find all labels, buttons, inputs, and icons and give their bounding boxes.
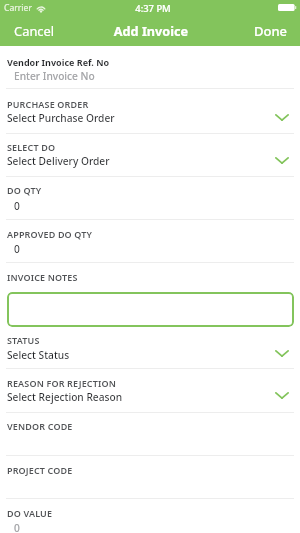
staticText: DO QTY xyxy=(7,184,42,196)
button[interactable]: Invoice notes xyxy=(7,292,294,327)
other: Open picker xyxy=(275,114,289,121)
button[interactable] xyxy=(0,369,300,411)
staticText: 0 xyxy=(14,242,20,256)
button[interactable]: Cancel xyxy=(8,19,61,43)
staticText: Select Purchase Order xyxy=(7,111,115,125)
other: Open picker xyxy=(275,392,289,399)
button[interactable] xyxy=(0,327,300,368)
staticText: STATUS xyxy=(7,334,40,346)
staticText: 0 xyxy=(14,199,20,213)
button[interactable] xyxy=(0,220,300,262)
button[interactable] xyxy=(0,456,300,498)
staticText: Carrier xyxy=(4,2,32,14)
staticText: Done xyxy=(254,22,288,40)
staticText: DO VALUE xyxy=(7,507,53,519)
staticText: PROJECT CODE xyxy=(7,464,73,476)
staticText: PURCHASE ORDER xyxy=(7,98,89,110)
button[interactable]: Done xyxy=(248,19,294,43)
staticText: REASON FOR REJECTION xyxy=(7,377,116,389)
staticText: 4:37 PM xyxy=(3,2,300,15)
staticText: SELECT DO xyxy=(7,141,56,153)
other: Open picker xyxy=(275,157,289,164)
button[interactable] xyxy=(0,89,300,133)
staticText: Select Delivery Order xyxy=(7,154,110,168)
staticText: 0 xyxy=(14,521,20,533)
button[interactable] xyxy=(0,499,300,532)
button[interactable] xyxy=(0,46,300,88)
staticText: Cancel xyxy=(14,22,55,40)
staticText: Select Rejection Reason xyxy=(7,390,123,404)
staticText: Add Invoice xyxy=(1,22,300,39)
staticText: APPROVED DO QTY xyxy=(7,228,93,240)
staticText: Enter Invoice No xyxy=(14,69,95,83)
button[interactable] xyxy=(0,134,300,175)
staticText: Select Status xyxy=(7,348,70,362)
staticText: Vendor Invoice Ref. No xyxy=(7,56,110,68)
other: Open picker xyxy=(275,350,289,357)
button[interactable] xyxy=(0,177,300,219)
staticText: INVOICE NOTES xyxy=(7,271,78,283)
button[interactable] xyxy=(0,413,300,455)
staticText: VENDOR CODE xyxy=(7,420,73,432)
